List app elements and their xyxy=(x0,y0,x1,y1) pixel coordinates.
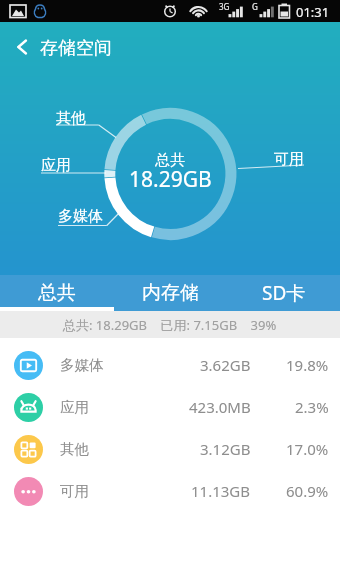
staticText: 18.29GB xyxy=(129,165,212,194)
staticText: 19.8% xyxy=(286,355,329,375)
staticText: 2.3% xyxy=(295,397,329,417)
staticText: 01:31 xyxy=(296,3,330,21)
staticText: 3G xyxy=(219,1,230,12)
staticText: 17.0% xyxy=(286,439,329,459)
staticText: 应用 xyxy=(60,398,89,416)
button[interactable]: 内存储 xyxy=(114,275,227,311)
staticText: 其他 xyxy=(60,440,89,458)
staticText: 其他 xyxy=(56,109,86,128)
staticText: 可用 xyxy=(274,150,304,169)
button[interactable]: 多媒体 xyxy=(0,344,340,386)
button[interactable]: Back xyxy=(5,30,39,64)
staticText: 多媒体 xyxy=(58,207,103,226)
staticText: 总共 xyxy=(38,281,76,305)
staticText: 应用 xyxy=(41,156,71,175)
staticText: 总共: 18.29GB 已用: 7.15GB 39% xyxy=(63,316,277,334)
button[interactable]: 可用 xyxy=(0,470,340,512)
staticText: 多媒体 xyxy=(60,356,104,374)
button[interactable]: SD卡 xyxy=(227,275,340,311)
staticText: 11.13GB xyxy=(191,481,251,501)
button[interactable]: 总共 xyxy=(0,275,114,311)
staticText: 总共 xyxy=(155,151,185,170)
button[interactable]: 其他 xyxy=(0,428,340,470)
staticText: G xyxy=(252,1,258,12)
staticText: SD卡 xyxy=(262,280,306,306)
staticText: 60.9% xyxy=(286,481,329,501)
staticText: 3.62GB xyxy=(200,355,251,375)
staticText: 423.0MB xyxy=(189,397,251,417)
button[interactable]: 应用 xyxy=(0,386,340,428)
staticText: 存储空间 xyxy=(40,37,112,60)
staticText: 可用 xyxy=(60,482,89,500)
staticText: 内存储 xyxy=(142,281,199,305)
staticText: 3.12GB xyxy=(200,439,251,459)
